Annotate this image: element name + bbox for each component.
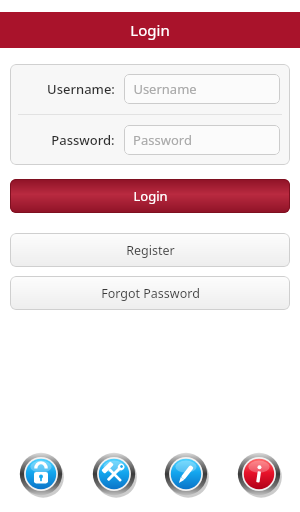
button[interactable]: Info [236, 451, 282, 497]
staticText: Register [126, 242, 175, 259]
staticText: Login [133, 187, 168, 205]
button[interactable]: Login [10, 179, 290, 213]
staticText: Password: [51, 131, 115, 149]
button[interactable]: Forgot Password [10, 276, 290, 310]
staticText: Username: [47, 80, 115, 98]
staticText: Login [130, 20, 170, 40]
button[interactable]: Register [10, 233, 290, 267]
button[interactable]: Security [18, 451, 64, 497]
button[interactable]: Edit [163, 451, 209, 497]
staticText: Forgot Password [101, 285, 200, 302]
staticText: Username [133, 80, 197, 98]
staticText: Password [133, 131, 192, 149]
button[interactable]: Password [124, 125, 280, 155]
button[interactable]: Tools [91, 451, 137, 497]
button[interactable]: Username [124, 74, 280, 104]
